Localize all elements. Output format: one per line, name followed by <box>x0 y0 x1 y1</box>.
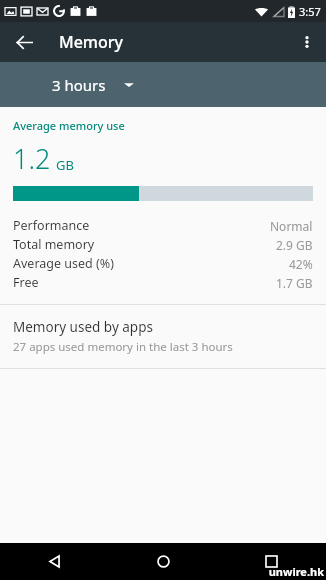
staticText: 1.7 GB <box>276 275 313 291</box>
staticText: 1.2 <box>13 140 51 177</box>
button[interactable]: Recent apps <box>217 543 326 580</box>
staticText: Free <box>13 274 39 291</box>
staticText: unwire.hk <box>268 564 324 579</box>
staticText: 42% <box>289 256 313 272</box>
staticText: Average memory use <box>13 118 125 133</box>
staticText: Memory used by apps <box>13 318 153 336</box>
staticText: 3 hours <box>52 75 106 95</box>
button[interactable]: Memory used by apps <box>0 305 326 368</box>
staticText: Average used (%) <box>13 255 114 272</box>
staticText: Performance <box>13 217 90 234</box>
button[interactable]: Back <box>7 25 41 59</box>
staticText: GB <box>56 156 74 174</box>
staticText: Normal <box>270 218 313 234</box>
staticText: 3:57 <box>299 4 321 19</box>
button[interactable]: Home <box>109 543 218 580</box>
button[interactable]: Back <box>0 543 109 580</box>
staticText: 2.9 GB <box>276 237 313 253</box>
button[interactable]: 3 hours <box>48 67 138 103</box>
staticText: Memory <box>59 31 124 53</box>
button[interactable]: More options <box>290 25 324 59</box>
staticText: 27 apps used memory in the last 3 hours <box>13 339 233 355</box>
staticText: Total memory <box>13 236 95 253</box>
